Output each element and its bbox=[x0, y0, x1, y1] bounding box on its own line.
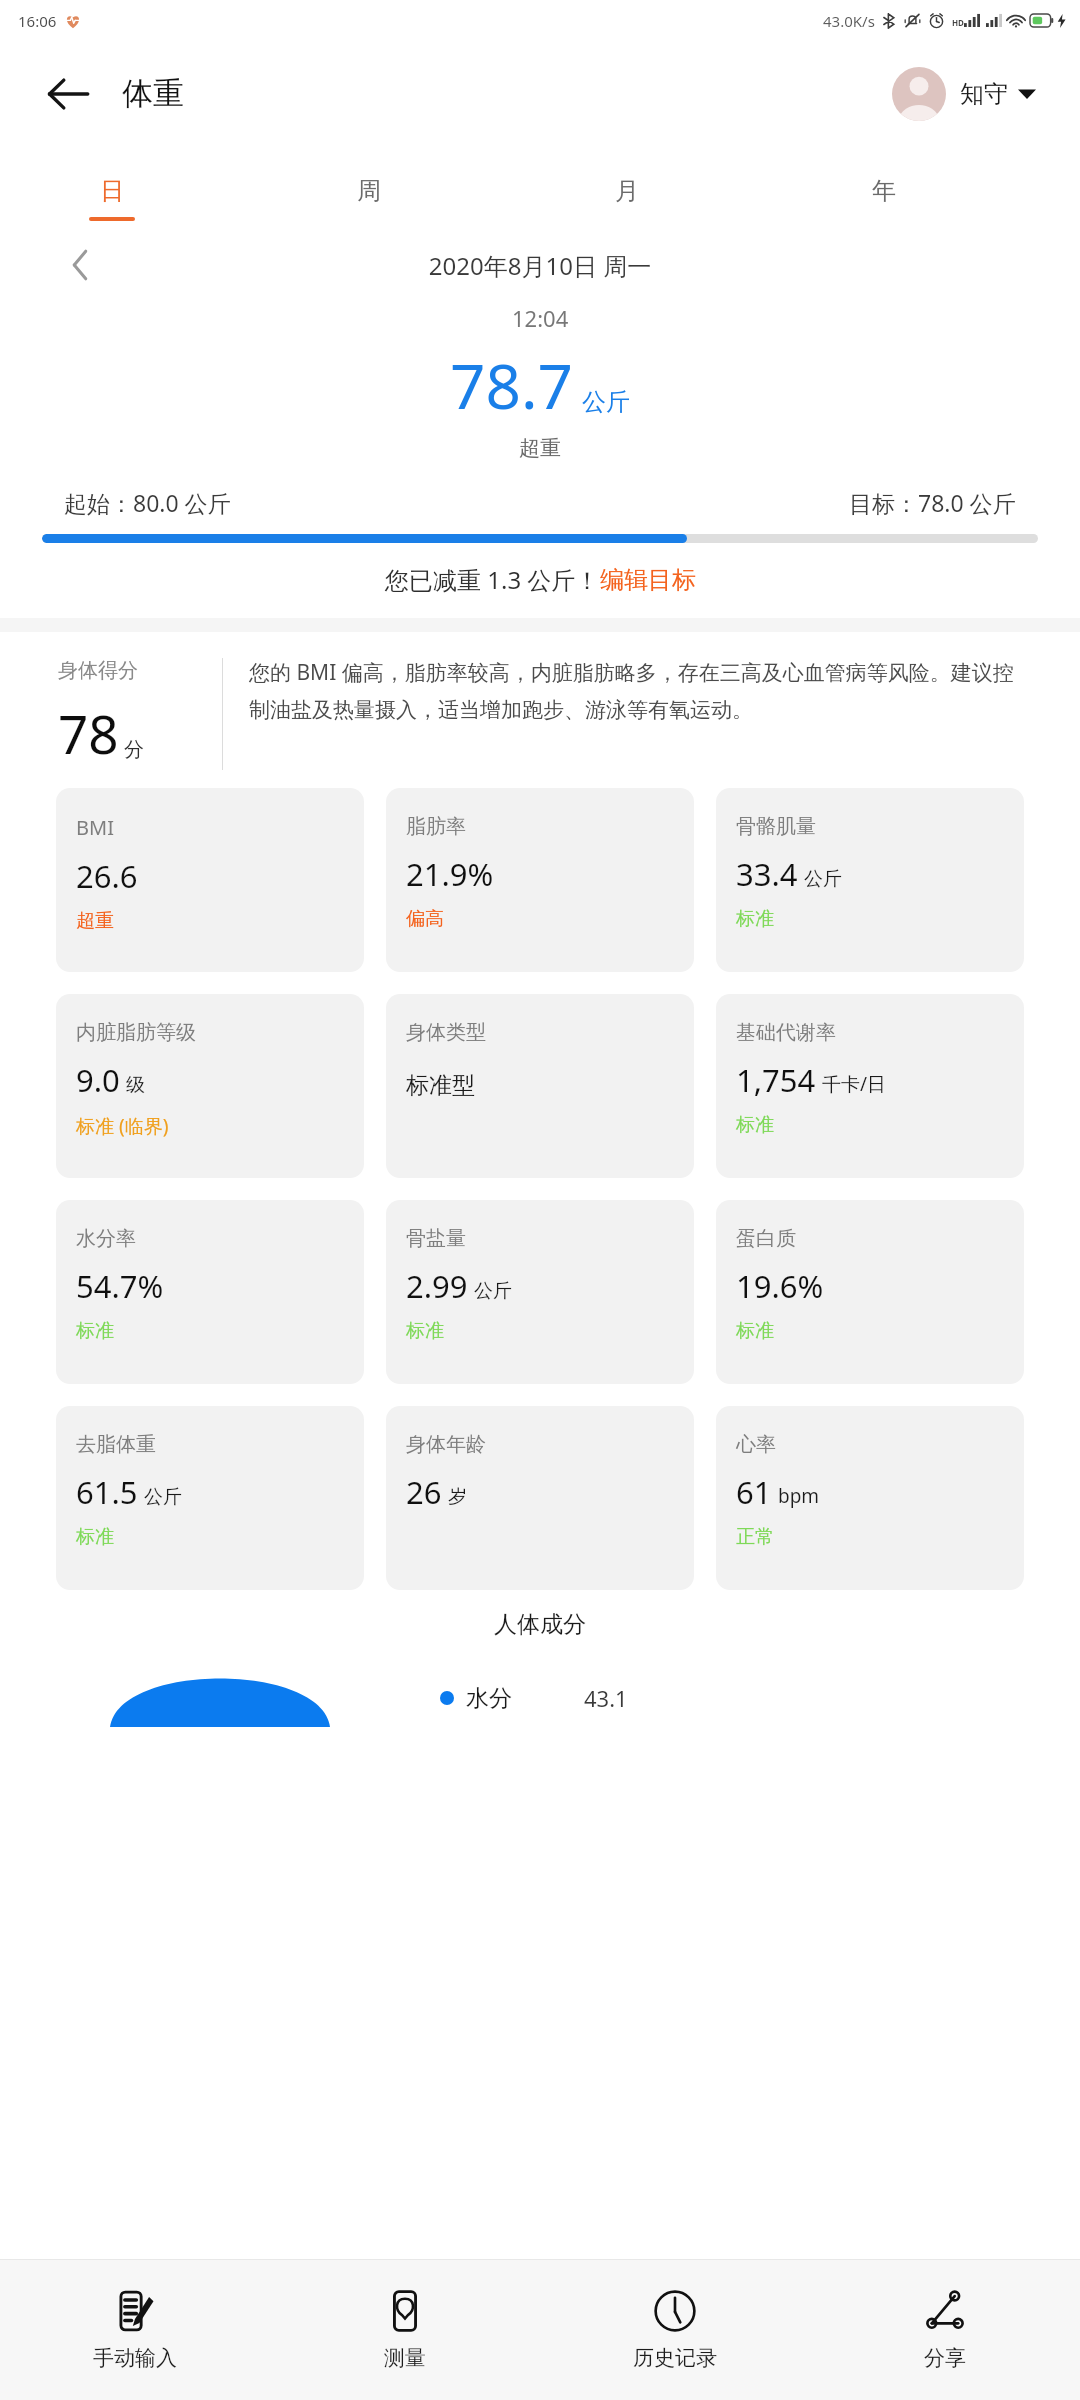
staticText: HD bbox=[952, 17, 964, 28]
staticText: 16:06 bbox=[18, 11, 57, 31]
staticText: BMI bbox=[76, 814, 114, 841]
button[interactable]: 手动输入 bbox=[0, 2260, 270, 2400]
button[interactable]: 骨盐量 bbox=[386, 1200, 694, 1384]
staticText: 手动输入 bbox=[93, 2345, 177, 2371]
staticText: 33.4 bbox=[736, 853, 798, 895]
button[interactable]: 日 bbox=[66, 170, 158, 227]
staticText: 公斤 bbox=[144, 1485, 182, 1509]
staticText: 公斤 bbox=[804, 867, 842, 891]
staticText: 蛋白质 bbox=[736, 1226, 796, 1251]
staticText: 骨盐量 bbox=[406, 1226, 466, 1251]
staticText: 公斤 bbox=[474, 1279, 512, 1303]
staticText: 月 bbox=[615, 176, 639, 206]
button[interactable]: 分享 bbox=[810, 2260, 1080, 2400]
staticText: 标准 bbox=[76, 1525, 114, 1549]
button[interactable]: BMI bbox=[56, 788, 364, 972]
staticText: 知守 bbox=[960, 79, 1008, 109]
staticText: 2.99 bbox=[406, 1265, 468, 1307]
staticText: 年 bbox=[872, 176, 896, 206]
staticText: 超重 bbox=[519, 435, 561, 461]
staticText: 标准 bbox=[406, 1319, 444, 1343]
staticText: 21.9% bbox=[406, 853, 494, 895]
button[interactable]: 水分率 bbox=[56, 1200, 364, 1384]
staticText: 身体得分 bbox=[58, 658, 138, 683]
button[interactable]: 身体年龄 bbox=[386, 1406, 694, 1590]
staticText: 54.7% bbox=[76, 1265, 164, 1307]
button[interactable]: 编辑目标 bbox=[600, 565, 696, 595]
button[interactable]: 内脏脂肪等级 bbox=[56, 994, 364, 1178]
staticText: 周 bbox=[357, 176, 381, 206]
staticText: 人体成分 bbox=[0, 1610, 1080, 1639]
staticText: 身体年龄 bbox=[406, 1432, 486, 1457]
staticText: 标准 bbox=[736, 907, 774, 931]
staticText: 2020年8月10日 周一 bbox=[0, 249, 1080, 282]
staticText: 标准型 bbox=[406, 1071, 475, 1100]
button[interactable]: 身体类型 bbox=[386, 994, 694, 1178]
staticText: 标准 bbox=[736, 1319, 774, 1343]
staticText: 岁 bbox=[448, 1485, 467, 1509]
staticText: 26.6 bbox=[76, 855, 138, 897]
staticText: 标准 (临界) bbox=[76, 1113, 169, 1139]
staticText: 43.0K/s bbox=[823, 11, 875, 31]
staticText: 水分率 bbox=[76, 1226, 136, 1251]
staticText: 超重 bbox=[76, 909, 114, 933]
button[interactable]: 周 bbox=[323, 170, 415, 227]
button[interactable]: 蛋白质 bbox=[716, 1200, 1024, 1384]
button[interactable]: 基础代谢率 bbox=[716, 994, 1024, 1178]
button[interactable]: Previous day bbox=[58, 243, 102, 287]
staticText: 26 bbox=[406, 1471, 442, 1513]
button[interactable]: 骨骼肌量 bbox=[716, 788, 1024, 972]
staticText: 起始：80.0 公斤 bbox=[64, 487, 231, 518]
staticText: 骨骼肌量 bbox=[736, 814, 816, 839]
button[interactable]: 心率 bbox=[716, 1406, 1024, 1590]
button[interactable]: 去脂体重 bbox=[56, 1406, 364, 1590]
button[interactable]: 月 bbox=[581, 170, 673, 227]
staticText: 78.7 bbox=[450, 343, 574, 427]
button[interactable]: 测量 bbox=[270, 2260, 540, 2400]
button[interactable]: 知守 bbox=[888, 63, 1040, 125]
staticText: 标准 bbox=[76, 1319, 114, 1343]
staticText: 测量 bbox=[384, 2345, 426, 2371]
staticText: 公斤 bbox=[582, 387, 630, 417]
staticText: 目标：78.0 公斤 bbox=[849, 487, 1016, 518]
staticText: 分 bbox=[124, 737, 144, 762]
staticText: 心率 bbox=[736, 1432, 776, 1457]
staticText: 分享 bbox=[924, 2345, 966, 2371]
staticText: 身体类型 bbox=[406, 1020, 486, 1045]
staticText: 正常 bbox=[736, 1525, 774, 1549]
staticText: 78 bbox=[58, 697, 119, 769]
staticText: 历史记录 bbox=[633, 2345, 717, 2371]
staticText: 脂肪率 bbox=[406, 814, 466, 839]
staticText: 基础代谢率 bbox=[736, 1020, 836, 1045]
staticText: 9.0 bbox=[76, 1059, 120, 1101]
staticText: 19.6% bbox=[736, 1265, 824, 1307]
staticText: 61 bbox=[736, 1471, 772, 1513]
staticText: 日 bbox=[100, 176, 124, 206]
button[interactable]: Back bbox=[40, 66, 96, 122]
button[interactable]: 历史记录 bbox=[540, 2260, 810, 2400]
staticText: 12:04 bbox=[512, 303, 569, 333]
staticText: 水分 bbox=[466, 1684, 512, 1713]
staticText: 1,754 bbox=[736, 1059, 816, 1101]
staticText: 61.5 bbox=[76, 1471, 138, 1513]
staticText: 体重 bbox=[122, 74, 184, 113]
staticText: 级 bbox=[126, 1073, 145, 1097]
staticText: 千卡/日 bbox=[822, 1071, 887, 1097]
staticText: bpm bbox=[778, 1483, 820, 1509]
staticText: 偏高 bbox=[406, 907, 444, 931]
staticText: 内脏脂肪等级 bbox=[76, 1020, 196, 1045]
staticText: 去脂体重 bbox=[76, 1432, 156, 1457]
staticText: 编辑目标 bbox=[600, 565, 696, 595]
staticText: 43.1 bbox=[584, 1683, 628, 1713]
button[interactable]: 脂肪率 bbox=[386, 788, 694, 972]
button[interactable]: 年 bbox=[838, 170, 930, 227]
staticText: 您已减重 1.3 公斤！ bbox=[385, 563, 600, 596]
staticText: 标准 bbox=[736, 1113, 774, 1137]
staticText: 您的 BMI 偏高，脂肪率较高，内脏脂肪略多，存在三高及心血管病等风险。建议控制… bbox=[249, 658, 1028, 723]
